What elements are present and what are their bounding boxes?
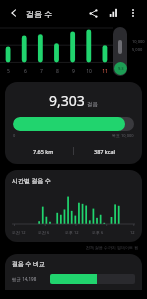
button[interactable]: 9,303 — [5, 82, 142, 164]
button[interactable]: Scale slider — [113, 27, 127, 76]
staticText: 시간별 걸음 수 — [12, 177, 52, 185]
staticText: 전체 걸음 수까지 업데이트 됨 — [86, 245, 139, 250]
staticText: 5,000 — [132, 47, 143, 52]
staticText: 10,000 — [132, 39, 145, 44]
staticText: 걸음 수 비교 — [12, 260, 46, 268]
button[interactable]: 시간별 걸음 수 — [5, 170, 142, 242]
staticText: 387 kcal — [94, 148, 115, 155]
staticText: 10 — [86, 68, 92, 75]
staticText: 9,303 — [49, 91, 85, 110]
staticText: 11 — [102, 68, 108, 75]
staticText: 걸음 — [87, 101, 98, 108]
staticText: 7.65 km — [33, 148, 54, 155]
staticText: 오전 12 — [12, 230, 26, 235]
button[interactable]: Share — [84, 4, 102, 22]
staticText: 0 — [13, 133, 16, 138]
button[interactable]: Back — [5, 4, 23, 22]
staticText: 12 — [130, 230, 135, 235]
staticText: 9.3 — [118, 66, 124, 71]
staticText: 7 — [40, 68, 43, 75]
staticText: 6 — [24, 68, 27, 75]
button[interactable]: 5 — [0, 26, 113, 78]
button[interactable]: Chart — [104, 4, 122, 22]
staticText: 오후 12 — [65, 230, 79, 235]
button[interactable]: 걸음 수 비교 — [5, 254, 142, 290]
staticText: 오후 6 — [92, 230, 104, 235]
staticText: 8 — [56, 68, 59, 75]
button[interactable]: More options — [124, 4, 142, 22]
staticText: 5 — [7, 68, 10, 75]
staticText: 걸음 수 — [26, 8, 53, 19]
staticText: 오전 6 — [38, 230, 50, 235]
staticText: 평균 14,198 — [12, 276, 37, 282]
staticText: 목표 10,000 — [112, 133, 134, 138]
staticText: 9 — [72, 68, 75, 75]
